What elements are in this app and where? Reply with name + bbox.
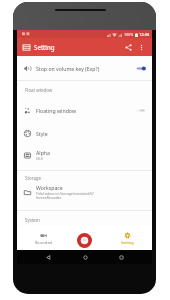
button[interactable]: Recents <box>116 252 126 262</box>
button[interactable]: Recorded <box>29 232 57 245</box>
staticText: Workspace <box>36 184 63 191</box>
button[interactable]: Alpha <box>17 145 152 165</box>
button[interactable]: Stop on volume key (Exp?) <box>17 60 152 76</box>
button[interactable]: Share <box>122 41 134 53</box>
staticText: Setting <box>121 240 134 245</box>
button[interactable]: Back <box>43 252 53 262</box>
staticText: Style <box>36 130 48 137</box>
staticText: Floating window <box>36 107 76 114</box>
staticText: Storage <box>25 175 42 181</box>
staticText: Alpha <box>36 149 50 156</box>
button[interactable]: More options <box>135 41 147 53</box>
staticText: 50.0 <box>36 156 43 161</box>
button[interactable]: Setting <box>113 232 141 245</box>
staticText: Recorded <box>35 240 52 245</box>
staticText: Float window <box>25 87 53 93</box>
staticText: Field videos in /storage/emulated/0/ Scr… <box>36 191 94 200</box>
staticText: Setting <box>34 43 55 51</box>
staticText: System <box>25 217 40 223</box>
button[interactable]: Style <box>17 125 152 141</box>
staticText: Stop on volume key (Exp?) <box>36 65 100 72</box>
button[interactable]: Home <box>80 252 90 262</box>
button[interactable]: Record <box>77 233 92 248</box>
staticText: 12:08 <box>139 32 150 37</box>
button[interactable]: Floating window <box>17 102 152 118</box>
button[interactable]: Menu <box>20 41 32 53</box>
staticText: 100% <box>124 32 134 37</box>
button[interactable]: Workspace <box>17 182 152 202</box>
